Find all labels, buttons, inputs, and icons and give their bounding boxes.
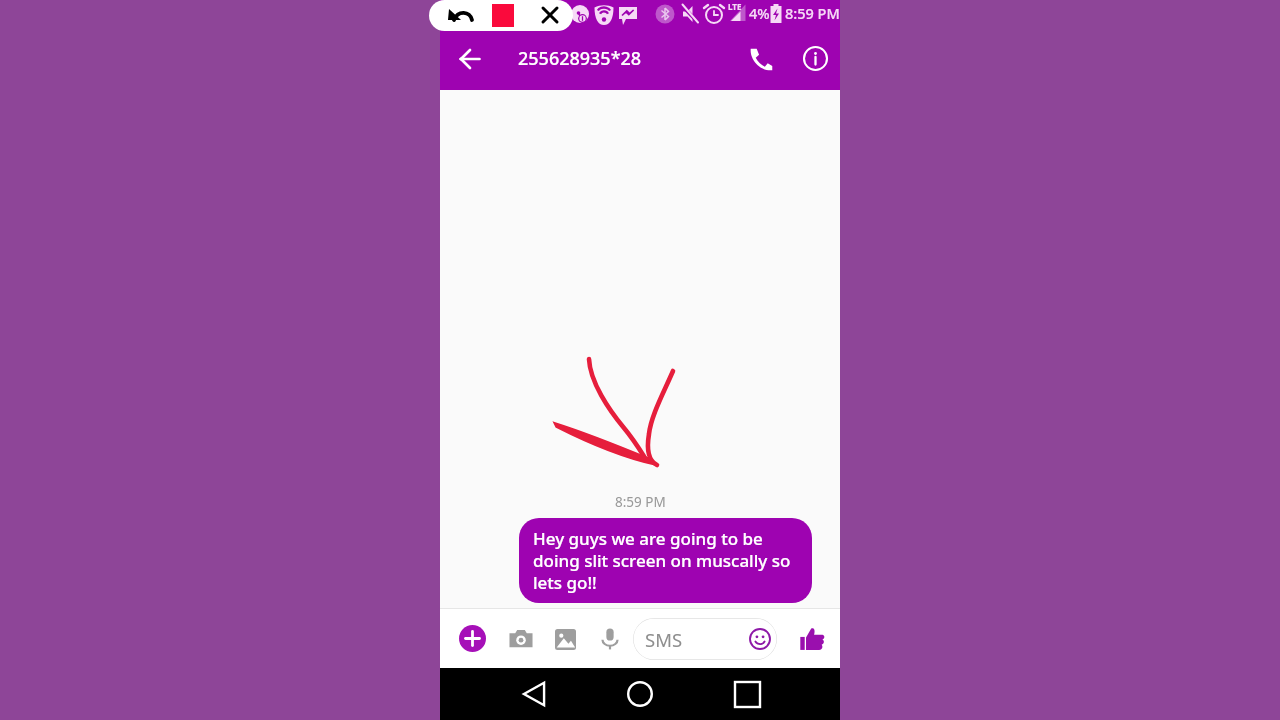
button[interactable]: Voice message: [595, 624, 625, 654]
button[interactable]: Conversation info: [793, 36, 837, 80]
button[interactable]: Recent apps: [725, 672, 769, 716]
button[interactable]: Camera: [506, 624, 536, 654]
button[interactable]: Gallery: [550, 624, 580, 654]
button[interactable]: Back: [512, 672, 556, 716]
button[interactable]: Add attachment: [459, 625, 486, 652]
staticText: 8:59 PM: [785, 3, 840, 23]
button[interactable]: Home: [618, 672, 662, 716]
button[interactable]: Back: [446, 35, 494, 83]
staticText: 8:59 PM: [615, 493, 666, 511]
staticText: 255628935*28: [518, 46, 642, 71]
staticText: SMS: [645, 627, 683, 652]
button[interactable]: Call: [739, 37, 783, 81]
button[interactable]: Recording controls: [429, 0, 573, 31]
staticText: 4%: [749, 3, 770, 23]
button[interactable]: Hey guys we are going to be doing slit s…: [519, 518, 812, 603]
button[interactable]: Send like: [797, 624, 827, 654]
staticText: Hey guys we are going to be doing slit s…: [533, 527, 802, 594]
staticText: LTE: [728, 1, 742, 12]
button[interactable]: SMS: [633, 618, 777, 660]
